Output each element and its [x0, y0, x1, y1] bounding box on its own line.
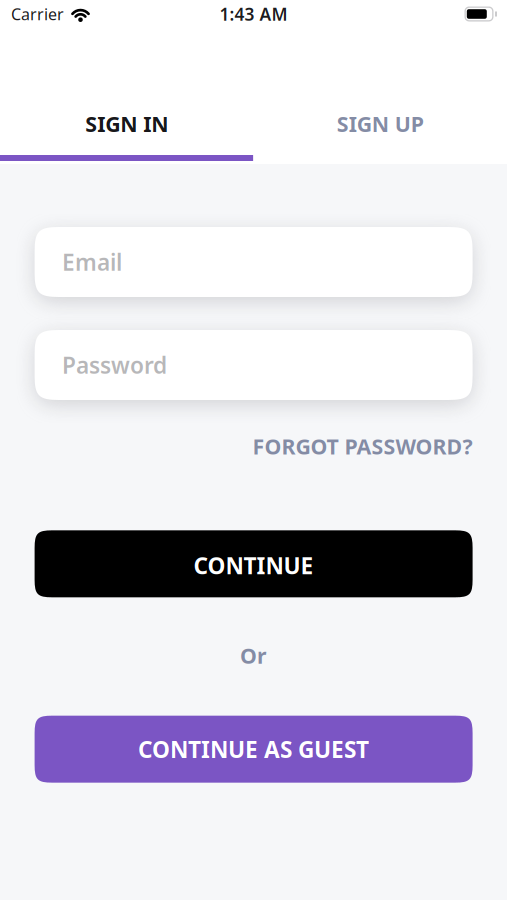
- staticText: FORGOT PASSWORD?: [253, 432, 473, 460]
- staticText: 1:43 AM: [219, 2, 287, 25]
- staticText: SIGN IN: [85, 110, 168, 138]
- staticText: CONTINUE AS GUEST: [138, 734, 369, 764]
- button[interactable]: CONTINUE: [35, 530, 473, 597]
- button[interactable]: SIGN IN: [0, 44, 253, 164]
- staticText: Carrier: [11, 3, 64, 25]
- button[interactable]: CONTINUE AS GUEST: [35, 716, 473, 783]
- button[interactable]: FORGOT PASSWORD?: [253, 432, 473, 460]
- button[interactable]: Email: [35, 227, 473, 297]
- button[interactable]: Password: [35, 330, 473, 400]
- staticText: Email: [62, 247, 122, 277]
- staticText: Or: [240, 641, 267, 670]
- button[interactable]: SIGN UP: [253, 44, 507, 164]
- staticText: CONTINUE: [194, 550, 314, 580]
- staticText: SIGN UP: [337, 110, 424, 138]
- staticText: Password: [62, 350, 167, 380]
